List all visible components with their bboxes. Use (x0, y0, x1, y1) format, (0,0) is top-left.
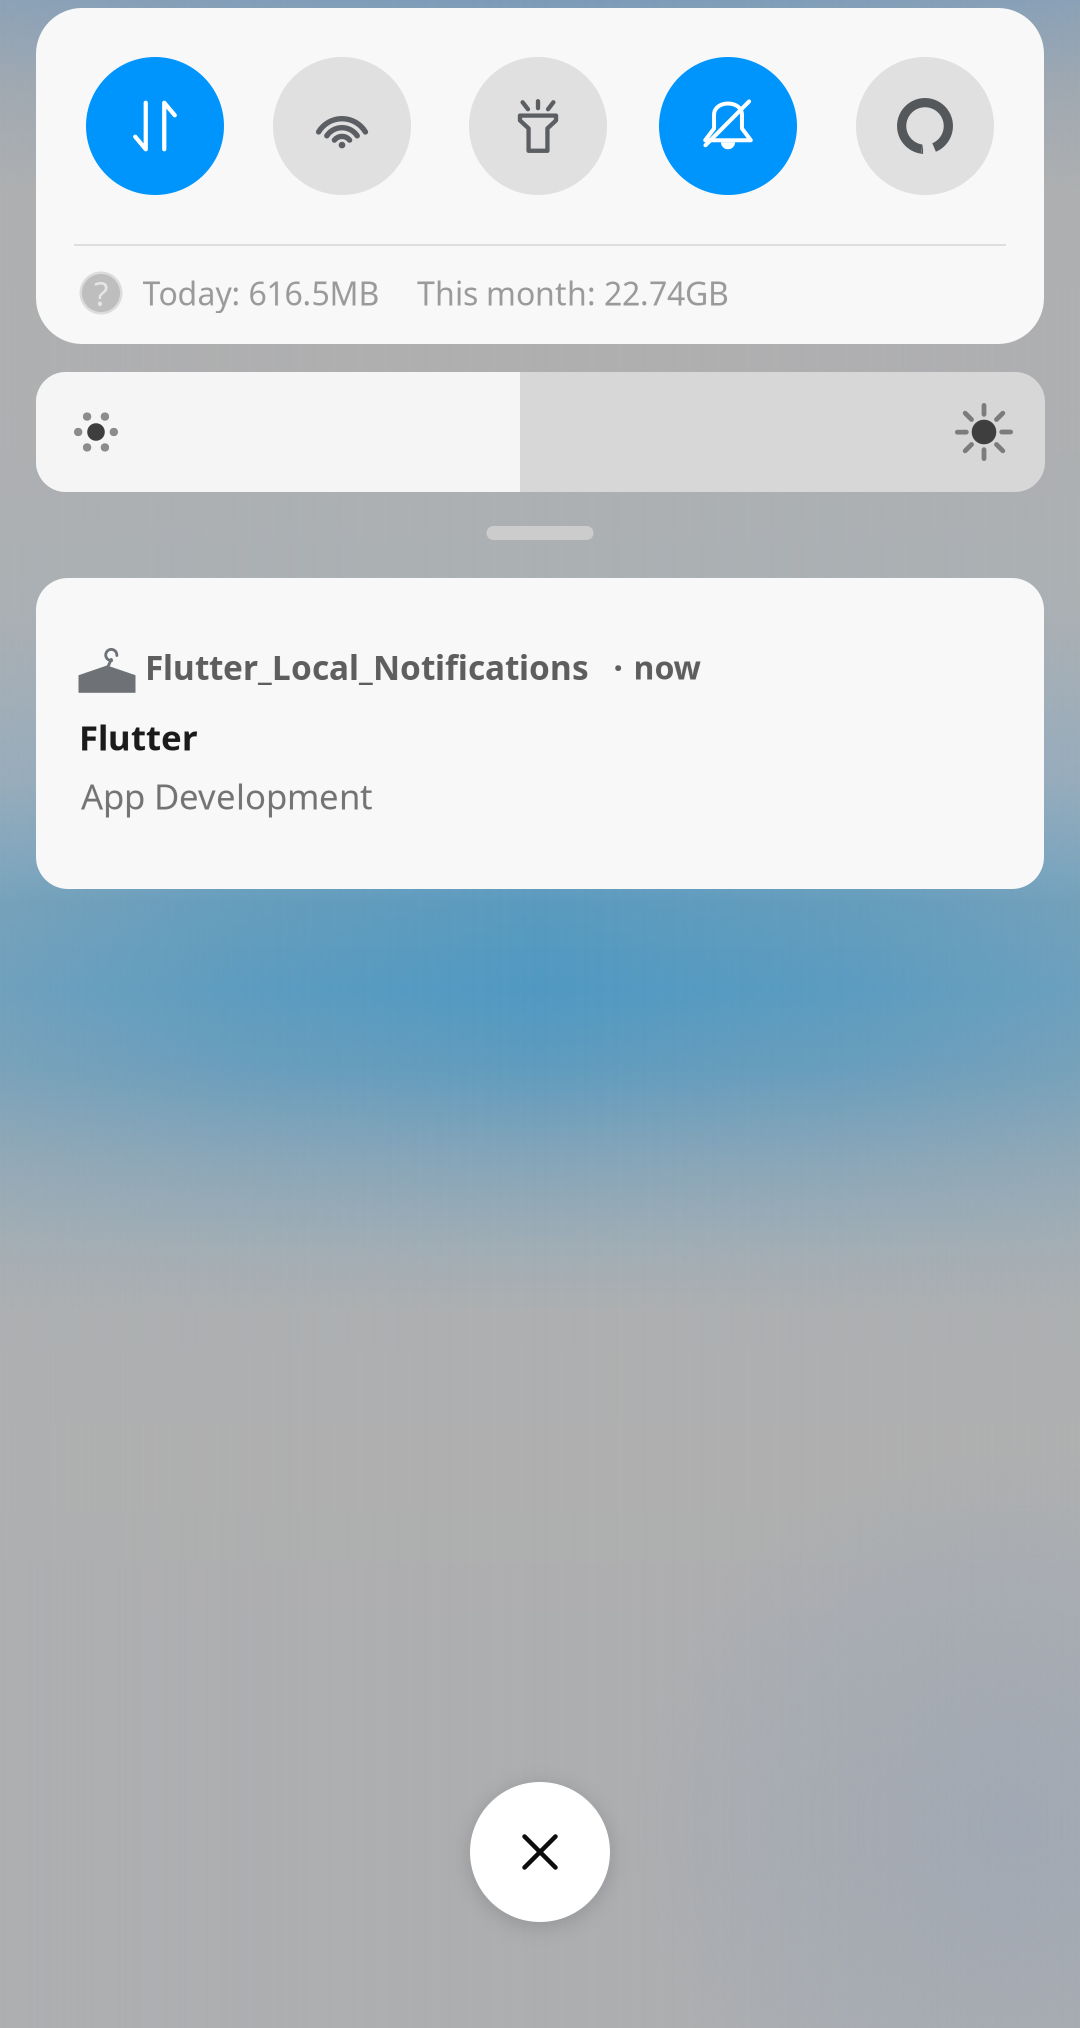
button[interactable]: Close (470, 1782, 610, 1922)
button[interactable]: Wi-Fi (273, 57, 411, 195)
staticText: Flutter_Local_Notifications (145, 645, 589, 689)
staticText: Today: 616.5MB (142, 272, 379, 314)
staticText: now (633, 646, 700, 688)
button[interactable]: Do not disturb (659, 57, 797, 195)
button[interactable]: Mobile data (86, 57, 224, 195)
staticText: This month: 22.74GB (417, 272, 729, 314)
button[interactable]: Alexa (856, 57, 994, 195)
staticText: · (613, 645, 622, 689)
button[interactable]: Flashlight (469, 57, 607, 195)
staticText: ? (94, 271, 108, 315)
staticText: App Development (81, 773, 373, 819)
staticText: Flutter (79, 714, 197, 760)
